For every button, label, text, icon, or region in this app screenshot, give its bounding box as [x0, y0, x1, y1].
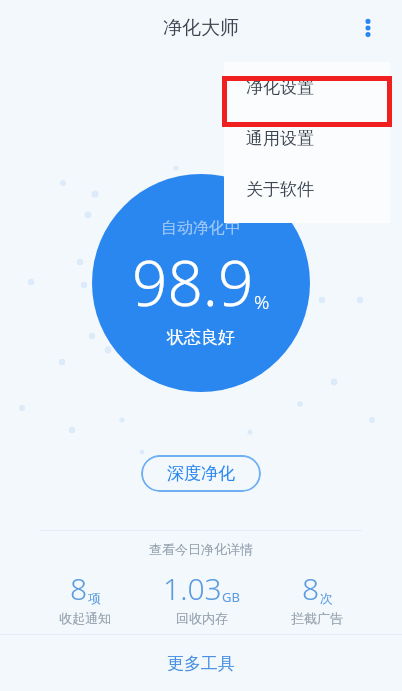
staticText: 净化设置	[246, 77, 314, 98]
staticText: 拦截广告	[291, 610, 343, 626]
button[interactable]: 自动净化中	[92, 174, 310, 392]
staticText: 次	[320, 590, 333, 606]
button[interactable]: 净化设置	[224, 62, 390, 113]
staticText: 自动净化中	[161, 218, 241, 238]
staticText: 净化大师	[163, 16, 239, 40]
staticText: GB	[222, 588, 240, 606]
staticText: 回收内存	[176, 610, 228, 626]
staticText: 收起通知	[59, 610, 111, 626]
button[interactable]: 通用设置	[224, 113, 390, 164]
button[interactable]: 关于软件	[224, 164, 390, 215]
staticText: 项	[88, 590, 101, 606]
staticText: 1.03	[163, 568, 222, 609]
staticText: 深度净化	[167, 463, 235, 484]
staticText: 98.9	[132, 240, 254, 324]
staticText: 状态良好	[167, 327, 235, 348]
staticText: %	[254, 289, 270, 315]
staticText: 8	[302, 568, 320, 609]
staticText: 更多工具	[167, 653, 235, 674]
button[interactable]: 深度净化	[141, 455, 261, 492]
staticText: 查看今日净化详情	[0, 541, 402, 557]
staticText: 关于软件	[246, 179, 314, 200]
button[interactable]: More options	[344, 4, 392, 52]
staticText: 通用设置	[246, 128, 314, 149]
staticText: 8	[70, 568, 88, 609]
button[interactable]: 更多工具	[0, 635, 402, 691]
